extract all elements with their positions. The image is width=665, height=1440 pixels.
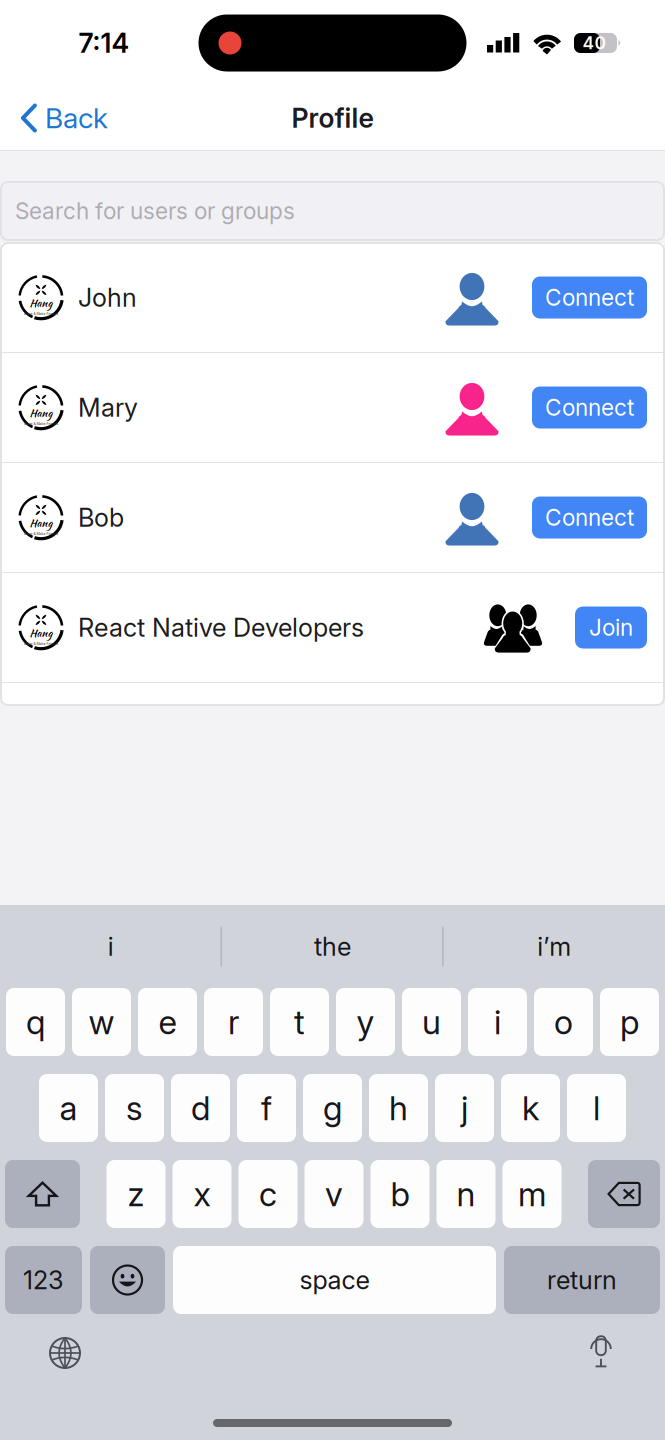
staticText: c xyxy=(259,1174,277,1214)
button[interactable]: e xyxy=(138,988,197,1056)
button[interactable]: d xyxy=(171,1074,230,1142)
staticText: a xyxy=(59,1088,77,1128)
button[interactable]: q xyxy=(6,988,65,1056)
button[interactable]: return xyxy=(504,1246,660,1314)
button[interactable]: t xyxy=(270,988,329,1056)
button[interactable]: Search for users or groups xyxy=(1,182,664,240)
button[interactable]: i’m xyxy=(443,907,665,985)
staticText: b xyxy=(390,1174,409,1214)
button[interactable]: u xyxy=(402,988,461,1056)
staticText: the xyxy=(314,931,351,962)
button[interactable]: Hang xyxy=(1,573,664,682)
button[interactable]: space xyxy=(173,1246,496,1314)
staticText: i’m xyxy=(537,931,571,962)
staticText: y xyxy=(356,1002,374,1042)
staticText: return xyxy=(547,1265,617,1295)
staticText: Connect xyxy=(545,284,634,311)
staticText: h xyxy=(389,1088,408,1128)
staticText: Hang xyxy=(29,405,52,421)
staticText: r xyxy=(228,1002,239,1042)
button[interactable]: Hang xyxy=(1,463,664,572)
button[interactable]: Back xyxy=(0,92,120,144)
staticText: p xyxy=(620,1002,639,1042)
button[interactable]: i xyxy=(0,907,222,985)
button[interactable]: p xyxy=(600,988,659,1056)
staticText: w xyxy=(88,1002,114,1042)
staticText: o xyxy=(554,1002,573,1042)
staticText: z xyxy=(127,1174,144,1214)
button[interactable]: h xyxy=(369,1074,428,1142)
staticText: Hang xyxy=(29,295,52,311)
button[interactable]: i xyxy=(468,988,527,1056)
button[interactable]: r xyxy=(204,988,263,1056)
staticText: Share & Make Friends xyxy=(23,642,58,646)
staticText: g xyxy=(323,1088,342,1128)
button[interactable]: n xyxy=(436,1160,495,1228)
staticText: m xyxy=(518,1174,546,1214)
button[interactable]: y xyxy=(336,988,395,1056)
staticText: i xyxy=(108,931,114,962)
button[interactable]: Hang xyxy=(1,353,664,462)
staticText: Connect xyxy=(545,504,634,531)
staticText: John xyxy=(78,282,137,313)
button[interactable]: b xyxy=(370,1160,429,1228)
button[interactable]: x xyxy=(172,1160,231,1228)
staticText: Bob xyxy=(78,502,124,533)
staticText: Search for users or groups xyxy=(15,197,295,225)
staticText: n xyxy=(456,1174,475,1214)
staticText: Hang xyxy=(29,515,52,531)
staticText: space xyxy=(299,1265,369,1295)
staticText: d xyxy=(191,1088,210,1128)
button[interactable]: v xyxy=(304,1160,363,1228)
staticText: Hang xyxy=(29,625,52,641)
staticText: Connect xyxy=(545,394,634,421)
staticText: Profile xyxy=(291,102,373,134)
button[interactable]: g xyxy=(303,1074,362,1142)
staticText: t xyxy=(294,1002,305,1042)
staticText: s xyxy=(126,1088,143,1128)
staticText: u xyxy=(422,1002,441,1042)
staticText: 7:14 xyxy=(78,27,129,59)
button[interactable]: j xyxy=(435,1074,494,1142)
button[interactable]: the xyxy=(222,907,443,985)
staticText: Mary xyxy=(78,392,138,423)
staticText: Share & Make Friends xyxy=(23,422,58,426)
staticText: Join xyxy=(589,614,633,641)
button[interactable]: f xyxy=(237,1074,296,1142)
staticText: Share & Make Friends xyxy=(23,532,58,536)
staticText: x xyxy=(193,1174,210,1214)
button[interactable]: 123 xyxy=(5,1246,82,1314)
staticText: Share & Make Friends xyxy=(23,312,58,316)
staticText: i xyxy=(494,1002,501,1042)
staticText: 123 xyxy=(23,1265,64,1295)
button[interactable]: Dictation xyxy=(587,1333,665,1373)
staticText: e xyxy=(158,1002,176,1042)
staticText: l xyxy=(593,1088,600,1128)
staticText: v xyxy=(325,1174,343,1214)
staticText: Back xyxy=(45,101,108,135)
button[interactable]: Next keyboard xyxy=(0,1336,82,1370)
button[interactable]: w xyxy=(72,988,131,1056)
button[interactable]: k xyxy=(501,1074,560,1142)
staticText: q xyxy=(26,1002,45,1042)
button[interactable]: c xyxy=(238,1160,297,1228)
button[interactable]: l xyxy=(567,1074,626,1142)
staticText: 40 xyxy=(582,32,605,53)
button[interactable]: Emoji xyxy=(90,1246,165,1314)
button[interactable]: Delete xyxy=(588,1160,660,1228)
button[interactable]: s xyxy=(105,1074,164,1142)
staticText: j xyxy=(461,1088,468,1128)
staticText: k xyxy=(522,1088,539,1128)
staticText: React Native Developers xyxy=(78,612,364,643)
button[interactable]: z xyxy=(106,1160,165,1228)
staticText: f xyxy=(261,1088,272,1128)
button[interactable]: Shift xyxy=(5,1160,80,1228)
button[interactable]: m xyxy=(502,1160,561,1228)
button[interactable]: a xyxy=(39,1074,98,1142)
button[interactable]: o xyxy=(534,988,593,1056)
button[interactable]: Hang xyxy=(1,243,664,352)
